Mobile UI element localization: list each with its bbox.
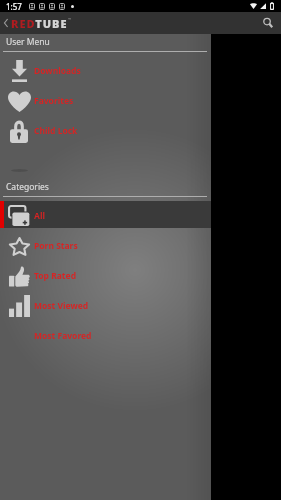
staticText: Top Rated bbox=[34, 270, 77, 282]
button[interactable]: Back bbox=[0, 12, 11, 34]
button[interactable]: Most Viewed bbox=[0, 291, 211, 321]
staticText: Most Viewed bbox=[34, 300, 89, 312]
staticText: Child Lock bbox=[34, 125, 78, 137]
button[interactable]: Favorites bbox=[0, 86, 211, 116]
button[interactable]: Most Favored bbox=[0, 321, 211, 351]
staticText: REDTUBE bbox=[11, 16, 68, 31]
staticText: 1:57 bbox=[6, 1, 22, 12]
staticText: Most Favored bbox=[34, 330, 92, 342]
staticText: User Menu bbox=[6, 36, 50, 48]
button[interactable]: Downloads bbox=[0, 56, 211, 86]
button[interactable]: All bbox=[0, 201, 211, 231]
staticText: All bbox=[34, 210, 45, 222]
staticText: Porn Stars bbox=[34, 240, 78, 252]
staticText: Favorites bbox=[34, 95, 74, 107]
button[interactable]: Top Rated bbox=[0, 261, 211, 291]
staticText: Downloads bbox=[34, 65, 81, 77]
button[interactable]: Search bbox=[255, 12, 281, 34]
button[interactable]: Child Lock bbox=[0, 116, 211, 146]
button[interactable]: Porn Stars bbox=[0, 231, 211, 261]
staticText: Categories bbox=[6, 181, 49, 193]
staticText: ™ bbox=[68, 17, 72, 22]
